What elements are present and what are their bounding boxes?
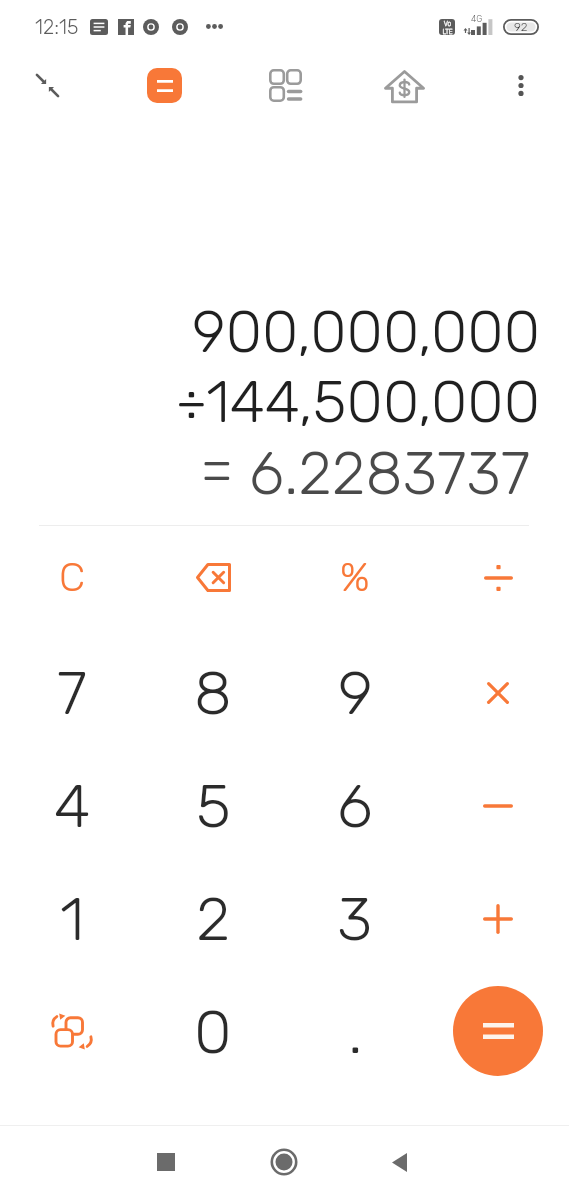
button[interactable]: Plus	[427, 862, 569, 975]
staticText: 900,000,000	[192, 297, 540, 367]
button[interactable]: Multiply	[427, 636, 569, 749]
staticText: 4	[54, 770, 91, 842]
staticText: 9	[338, 657, 373, 729]
staticText: 6	[337, 770, 373, 842]
button[interactable]: Equals	[453, 986, 543, 1076]
staticText: C	[59, 554, 86, 601]
staticText: 1	[60, 883, 85, 955]
button[interactable]: Divide	[427, 521, 569, 634]
button[interactable]: Back	[359, 1126, 439, 1198]
staticText: 6.2283737	[249, 438, 531, 509]
button[interactable]: Swap	[1, 975, 143, 1088]
staticText: .	[348, 996, 363, 1068]
staticText: 2	[196, 883, 231, 955]
button[interactable]: 4	[1, 749, 143, 862]
button[interactable]: Mortgage	[375, 57, 433, 115]
button[interactable]: 1	[1, 862, 143, 975]
staticText: 4G	[471, 14, 483, 25]
button[interactable]: 9	[284, 636, 426, 749]
button[interactable]: 2	[142, 862, 284, 975]
button[interactable]: 6	[284, 749, 426, 862]
button[interactable]: Home	[244, 1126, 324, 1198]
staticText: 8	[194, 657, 232, 729]
button[interactable]: Minus	[427, 749, 569, 862]
staticText: Vo LTE	[442, 20, 453, 35]
button[interactable]: 5	[142, 749, 284, 862]
button[interactable]: Recents	[126, 1126, 206, 1198]
staticText: 0	[194, 996, 232, 1068]
staticText: =	[200, 434, 234, 504]
staticText: 3	[337, 883, 373, 955]
button[interactable]: 8	[142, 636, 284, 749]
button[interactable]: Converters	[257, 57, 313, 113]
button[interactable]: Calculator	[147, 68, 182, 103]
button[interactable]: Clear	[1, 521, 143, 634]
button[interactable]: .	[284, 975, 426, 1088]
button[interactable]: Backspace	[142, 521, 284, 634]
button[interactable]: Percent	[284, 521, 426, 634]
button[interactable]: 3	[284, 862, 426, 975]
button[interactable]: More options	[497, 61, 545, 109]
staticText: 12:15	[35, 15, 79, 39]
staticText: ÷144,500,000	[174, 367, 540, 437]
button[interactable]: 7	[1, 636, 143, 749]
staticText: 5	[196, 770, 231, 842]
staticText: 92	[514, 20, 528, 34]
button[interactable]: 0	[142, 975, 284, 1088]
staticText: %	[340, 554, 370, 601]
button[interactable]: Collapse	[20, 58, 74, 112]
staticText: 7	[57, 657, 87, 729]
